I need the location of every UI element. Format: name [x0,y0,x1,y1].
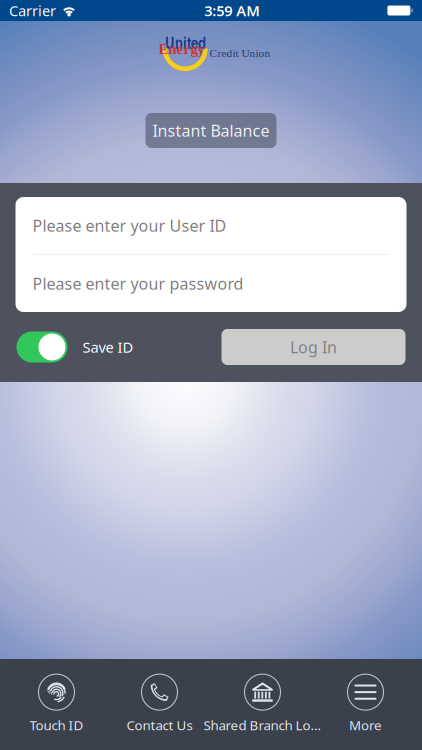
staticText: United [165,31,206,54]
staticText: Save ID [82,337,133,357]
staticText: Please enter your password [32,273,243,294]
button[interactable]: Please enter your User ID [15,197,406,254]
staticText: Instant Balance [152,120,269,141]
button[interactable]: Touch ID [5,658,108,750]
staticText: Energy [158,41,204,57]
staticText: Carrier [9,1,56,20]
button[interactable]: Save ID [16,331,67,362]
staticText: More [349,716,382,734]
button[interactable]: Shared Branch Lo… [211,658,314,750]
staticText: Touch ID [29,716,83,734]
button[interactable]: Contact Us [108,658,211,750]
button[interactable]: Please enter your password [15,255,406,312]
staticText: Contact Us [126,716,192,734]
staticText: 3:59 AM [204,1,260,20]
staticText: Log In [290,336,337,358]
button[interactable]: Log In [221,329,405,365]
button[interactable]: More [314,658,417,750]
staticText: Credit Union [209,47,270,59]
button[interactable]: Instant Balance [145,113,276,148]
staticText: Please enter your User ID [32,215,226,236]
staticText: Shared Branch Lo… [203,716,321,734]
